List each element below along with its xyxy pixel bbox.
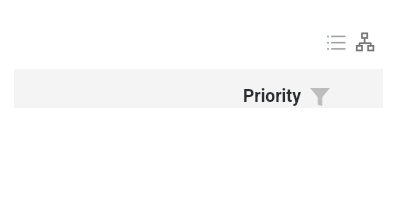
button[interactable]: List view [318, 26, 352, 58]
button[interactable]: Priority [14, 69, 383, 108]
button[interactable]: Filter [307, 85, 333, 109]
button[interactable]: Hierarchy view [349, 26, 382, 58]
staticText: Priority [243, 86, 301, 107]
